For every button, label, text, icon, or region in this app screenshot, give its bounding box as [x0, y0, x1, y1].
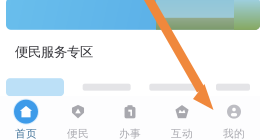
staticText: 互动 — [171, 127, 193, 140]
button[interactable]: 办事 — [104, 96, 156, 140]
button[interactable]: 首页 — [0, 96, 52, 140]
staticText: 便民 — [67, 127, 89, 140]
button[interactable]: 便民 — [52, 96, 104, 140]
button[interactable]: 我的 — [208, 96, 260, 140]
button[interactable]: 互动 — [156, 96, 208, 140]
staticText: 首页 — [15, 127, 37, 140]
staticText: 便民服务专区 — [15, 44, 93, 60]
staticText: 办事 — [119, 127, 141, 140]
staticText: 我的 — [223, 127, 245, 140]
